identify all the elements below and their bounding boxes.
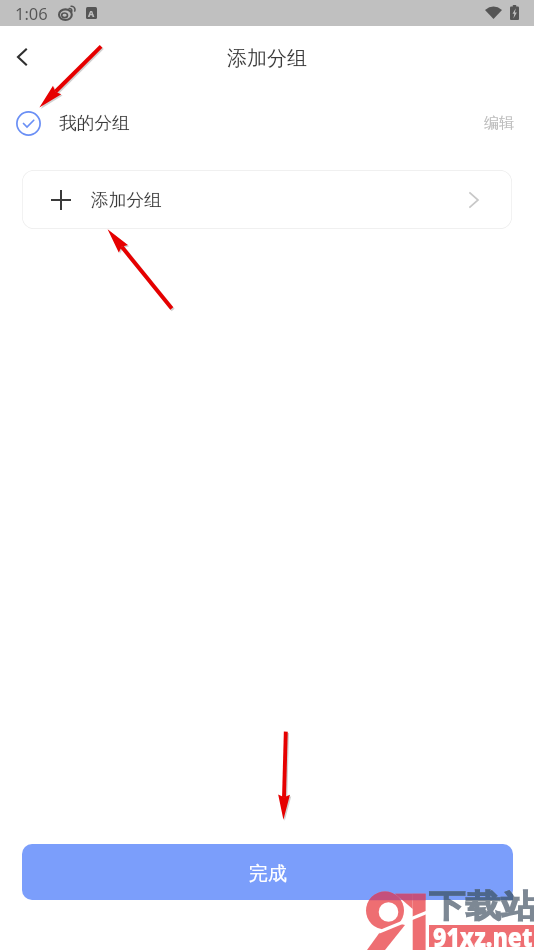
staticText: A bbox=[88, 7, 95, 19]
staticText: 我的分组 bbox=[59, 112, 130, 134]
staticText: 编辑 bbox=[484, 114, 514, 133]
staticText: 添加分组 bbox=[227, 46, 307, 71]
staticText: 91xz.net bbox=[433, 918, 532, 950]
staticText: 添加分组 bbox=[91, 189, 162, 211]
button[interactable]: 完成 bbox=[22, 844, 513, 900]
button[interactable]: Back bbox=[0, 31, 44, 83]
staticText: 1:06 bbox=[15, 2, 48, 24]
staticText: 完成 bbox=[249, 862, 287, 886]
button[interactable]: 添加分组 bbox=[22, 170, 512, 229]
staticText: 下载站 bbox=[429, 886, 534, 926]
button[interactable]: Group selected bbox=[0, 106, 44, 140]
button[interactable]: 编辑 bbox=[464, 107, 534, 140]
staticText: 下载站 bbox=[429, 886, 534, 926]
